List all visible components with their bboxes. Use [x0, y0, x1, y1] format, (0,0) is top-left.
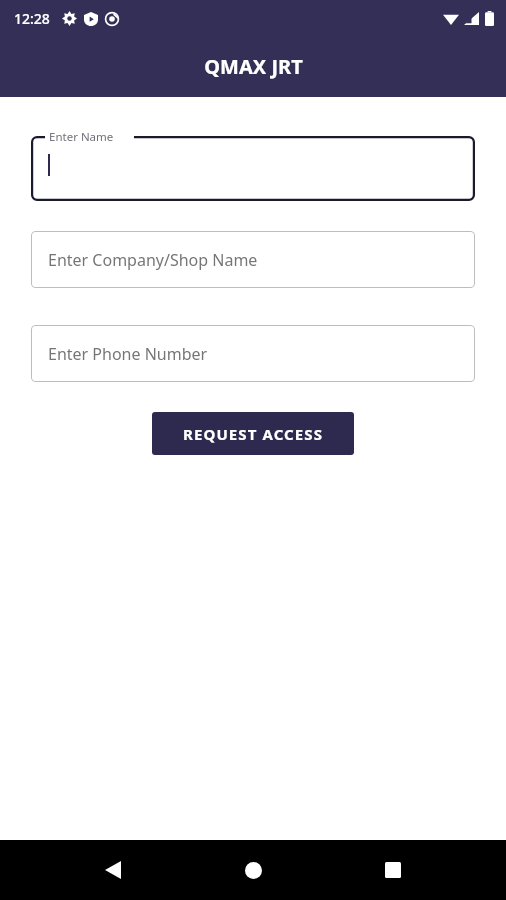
button[interactable]: Home: [226, 843, 280, 897]
staticText: Enter Name: [49, 129, 114, 145]
staticText: REQUEST ACCESS: [183, 424, 324, 444]
button[interactable]: Back: [86, 843, 140, 897]
button[interactable]: Enter Name: [31, 136, 475, 201]
button[interactable]: Enter Phone Number: [31, 325, 475, 382]
button[interactable]: Enter Company/Shop Name: [31, 231, 475, 288]
button[interactable]: REQUEST ACCESS: [152, 412, 354, 455]
staticText: QMAX JRT: [204, 53, 303, 80]
staticText: Enter Company/Shop Name: [48, 249, 258, 271]
staticText: Enter Phone Number: [48, 343, 208, 365]
button[interactable]: Recent apps: [366, 843, 420, 897]
staticText: 12:28: [14, 9, 50, 28]
